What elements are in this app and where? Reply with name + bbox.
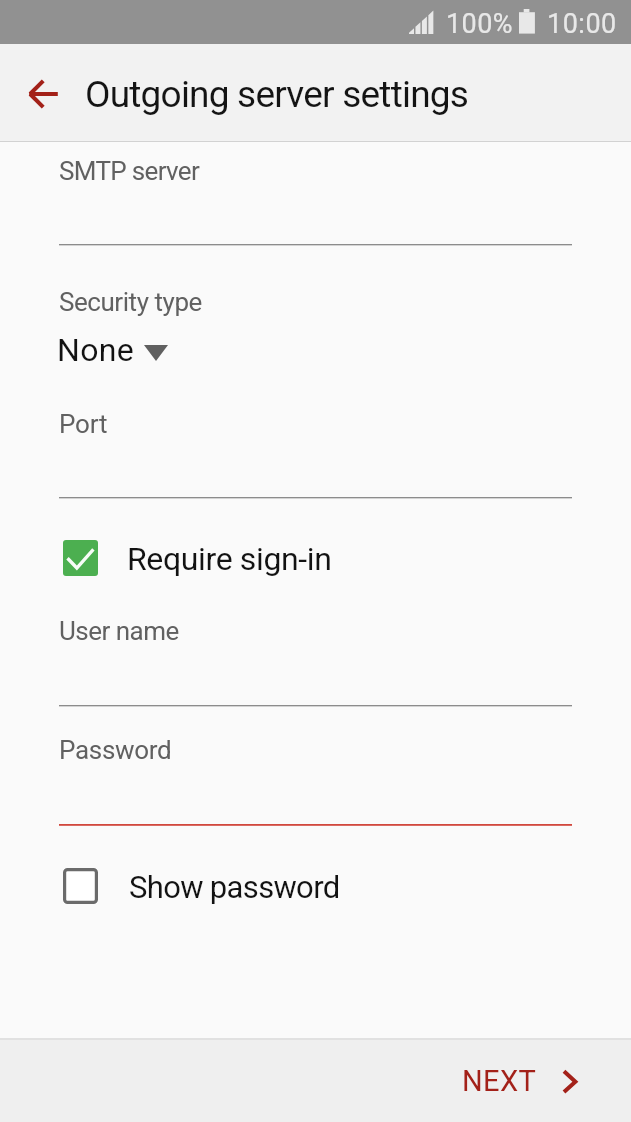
button[interactable]: Port: [0, 400, 631, 496]
button[interactable]: Navigate up: [14, 44, 72, 142]
button[interactable]: None: [57, 326, 168, 374]
button[interactable]: NEXT: [471, 1038, 631, 1122]
button[interactable]: Password: [0, 726, 631, 824]
staticText: Require sign-in: [127, 540, 332, 578]
staticText: Show password: [129, 869, 340, 905]
staticText: Port: [59, 409, 108, 439]
button[interactable]: Require sign-in: [0, 528, 631, 588]
staticText: 100%: [446, 8, 513, 40]
staticText: User name: [59, 616, 179, 646]
button[interactable]: Show password: [0, 856, 631, 916]
staticText: NEXT: [462, 1064, 537, 1098]
button[interactable]: User name: [0, 608, 631, 706]
staticText: SMTP server: [59, 156, 200, 186]
staticText: Security type: [59, 287, 202, 317]
staticText: None: [57, 331, 135, 369]
staticText: 10:00: [547, 8, 617, 40]
staticText: Outgoing server settings: [85, 73, 469, 116]
button[interactable]: SMTP server: [0, 148, 631, 248]
staticText: Password: [59, 735, 172, 765]
